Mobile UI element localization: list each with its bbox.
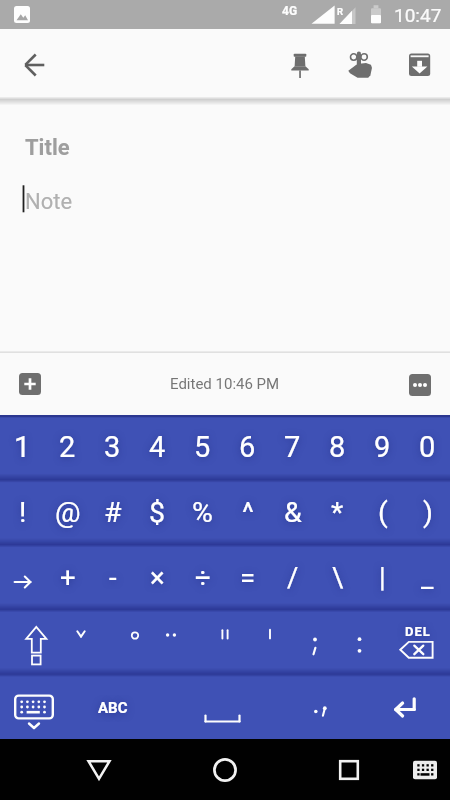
- staticText: Edited 10:46 PM: [170, 375, 280, 393]
- staticText: 1: [14, 430, 31, 464]
- button[interactable]: 6: [225, 416, 270, 478]
- staticText: ÷: [195, 561, 211, 593]
- button[interactable]: @: [45, 481, 90, 543]
- button[interactable]: $: [135, 481, 180, 543]
- staticText: &: [284, 496, 302, 529]
- button[interactable]: 5: [180, 416, 225, 478]
- staticText: R: [337, 6, 344, 17]
- button[interactable]: [114, 611, 156, 673]
- button[interactable]: +: [45, 546, 90, 608]
- staticText: 0: [419, 430, 436, 464]
- button[interactable]: 2: [45, 416, 90, 478]
- button[interactable]: !: [0, 481, 45, 543]
- button[interactable]: &: [270, 481, 315, 543]
- button[interactable]: [335, 41, 383, 89]
- staticText: 7: [284, 430, 301, 464]
- staticText: 4: [149, 430, 166, 464]
- button[interactable]: [11, 41, 59, 89]
- button[interactable]: [395, 41, 443, 89]
- button[interactable]: [60, 611, 102, 673]
- staticText: 6: [239, 430, 256, 464]
- button[interactable]: 0: [405, 416, 450, 478]
- button[interactable]: 8: [315, 416, 360, 478]
- staticText: !: [19, 496, 27, 529]
- staticText: @: [55, 496, 81, 529]
- button[interactable]: [339, 611, 381, 673]
- button[interactable]: [19, 373, 41, 395]
- button[interactable]: ): [405, 481, 450, 543]
- button[interactable]: \: [315, 546, 360, 608]
- button[interactable]: [160, 676, 285, 738]
- staticText: _: [421, 561, 434, 593]
- button[interactable]: [276, 41, 324, 89]
- button[interactable]: [0, 546, 45, 608]
- button[interactable]: 3: [90, 416, 135, 478]
- staticText: $: [149, 496, 166, 529]
- staticText: =: [240, 561, 256, 593]
- staticText: DEL: [405, 624, 431, 639]
- staticText: (: [378, 496, 388, 529]
- button[interactable]: [66, 676, 160, 738]
- button[interactable]: [0, 611, 62, 673]
- staticText: /: [287, 561, 299, 593]
- button[interactable]: [249, 611, 291, 673]
- staticText: 2: [59, 430, 76, 464]
- button[interactable]: |: [360, 546, 405, 608]
- button[interactable]: [319, 740, 379, 800]
- staticText: ): [423, 496, 433, 529]
- staticText: 3: [104, 430, 121, 464]
- staticText: \: [332, 561, 344, 593]
- button[interactable]: (: [360, 481, 405, 543]
- staticText: #: [104, 496, 122, 529]
- button[interactable]: 9: [360, 416, 405, 478]
- staticText: Title: [25, 135, 70, 161]
- staticText: +: [60, 561, 76, 593]
- staticText: -: [109, 561, 117, 593]
- button[interactable]: /: [270, 546, 315, 608]
- button[interactable]: %: [180, 481, 225, 543]
- button[interactable]: [409, 374, 431, 396]
- button[interactable]: [195, 740, 255, 800]
- button[interactable]: _: [405, 546, 450, 608]
- staticText: 10:47: [394, 4, 442, 26]
- button[interactable]: [285, 676, 350, 738]
- button[interactable]: ^: [225, 481, 270, 543]
- staticText: 5: [194, 430, 211, 464]
- button[interactable]: [400, 740, 450, 800]
- button[interactable]: [204, 611, 246, 673]
- staticText: |: [379, 561, 386, 593]
- button[interactable]: -: [90, 546, 135, 608]
- staticText: Note: [25, 189, 73, 215]
- button[interactable]: =: [225, 546, 270, 608]
- button[interactable]: 7: [270, 416, 315, 478]
- button[interactable]: [150, 611, 192, 673]
- staticText: %: [192, 496, 213, 529]
- staticText: *: [331, 496, 344, 529]
- staticText: 4G: [282, 4, 298, 18]
- button[interactable]: *: [315, 481, 360, 543]
- staticText: ^: [242, 496, 254, 529]
- button[interactable]: ÷: [180, 546, 225, 608]
- button[interactable]: [392, 611, 450, 673]
- button[interactable]: #: [90, 481, 135, 543]
- staticText: 9: [374, 430, 391, 464]
- button[interactable]: [294, 611, 336, 673]
- button[interactable]: [69, 740, 129, 800]
- button[interactable]: 1: [0, 416, 45, 478]
- staticText: ABC: [98, 699, 128, 717]
- button[interactable]: 4: [135, 416, 180, 478]
- button[interactable]: [350, 676, 450, 738]
- staticText: ×: [150, 561, 165, 593]
- button[interactable]: ×: [135, 546, 180, 608]
- staticText: 8: [329, 430, 346, 464]
- button[interactable]: [0, 676, 66, 738]
